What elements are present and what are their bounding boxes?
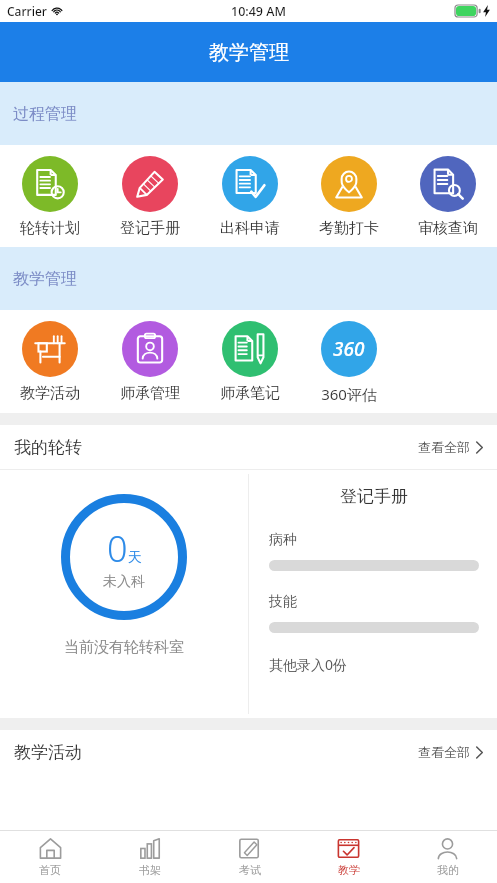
button[interactable]: 首页 (0, 831, 100, 883)
button[interactable]: 师承笔记 (200, 321, 299, 403)
staticText: 病种 (269, 531, 297, 549)
staticText: 出科申请 (220, 219, 280, 238)
button[interactable]: 考试 (200, 831, 299, 883)
staticText: 教学活动 (14, 742, 82, 763)
staticText: 师承笔记 (220, 384, 280, 403)
staticText: 360 (333, 336, 365, 362)
button[interactable]: 查看全部 (416, 433, 485, 461)
staticText: 查看全部 (418, 439, 470, 455)
staticText: 我的 (437, 863, 459, 877)
staticText: 当前没有轮转科室 (64, 638, 184, 657)
staticText: 其他录入0份 (269, 655, 348, 674)
staticText: 教学 (338, 863, 360, 877)
staticText: 教学管理 (209, 40, 289, 65)
staticText: 0 (107, 524, 128, 573)
staticText: 教学管理 (13, 269, 77, 289)
button[interactable]: 考勤打卡 (299, 156, 398, 238)
button[interactable]: 审核查询 (398, 156, 497, 238)
staticText: 轮转计划 (20, 219, 80, 238)
button[interactable]: 我的 (398, 831, 497, 883)
button[interactable]: 教学 (299, 831, 398, 883)
staticText: 师承管理 (120, 384, 180, 403)
button[interactable]: 教学管理 (0, 22, 497, 82)
staticText: 考试 (239, 863, 261, 877)
button[interactable]: 360 (299, 321, 398, 404)
staticText: 审核查询 (418, 219, 478, 238)
staticText: 过程管理 (13, 104, 77, 124)
staticText: 我的轮转 (14, 437, 82, 458)
staticText: 登记手册 (120, 219, 180, 238)
button[interactable]: 查看全部 (416, 738, 485, 766)
button[interactable]: 教学活动 (0, 321, 100, 403)
button[interactable]: 轮转计划 (0, 156, 100, 238)
staticText: 登记手册 (269, 486, 479, 507)
staticText: 未入科 (103, 573, 145, 591)
button[interactable]: 登记手册 (100, 156, 200, 238)
staticText: 查看全部 (418, 744, 470, 760)
button[interactable]: 师承管理 (100, 321, 200, 403)
staticText: 天 (128, 549, 142, 567)
staticText: Carrier (7, 3, 47, 19)
button[interactable]: 书架 (100, 831, 200, 883)
staticText: 技能 (269, 593, 297, 611)
staticText: 首页 (39, 863, 61, 877)
staticText: 教学活动 (20, 384, 80, 403)
staticText: 10:49 AM (231, 3, 286, 20)
staticText: 书架 (139, 863, 161, 877)
staticText: 考勤打卡 (319, 219, 379, 238)
button[interactable]: 出科申请 (200, 156, 299, 238)
staticText: 360评估 (321, 384, 377, 404)
